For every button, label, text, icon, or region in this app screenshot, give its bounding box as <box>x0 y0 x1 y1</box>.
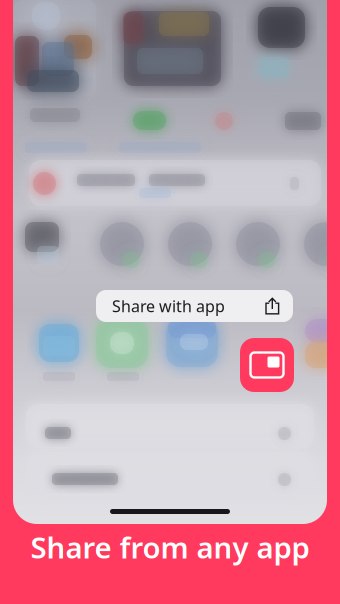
staticText: Share from any app <box>30 527 309 566</box>
staticText: Share with app <box>112 295 225 317</box>
button[interactable]: Share with app <box>96 290 293 322</box>
button[interactable]: Picture in Picture <box>240 338 294 392</box>
